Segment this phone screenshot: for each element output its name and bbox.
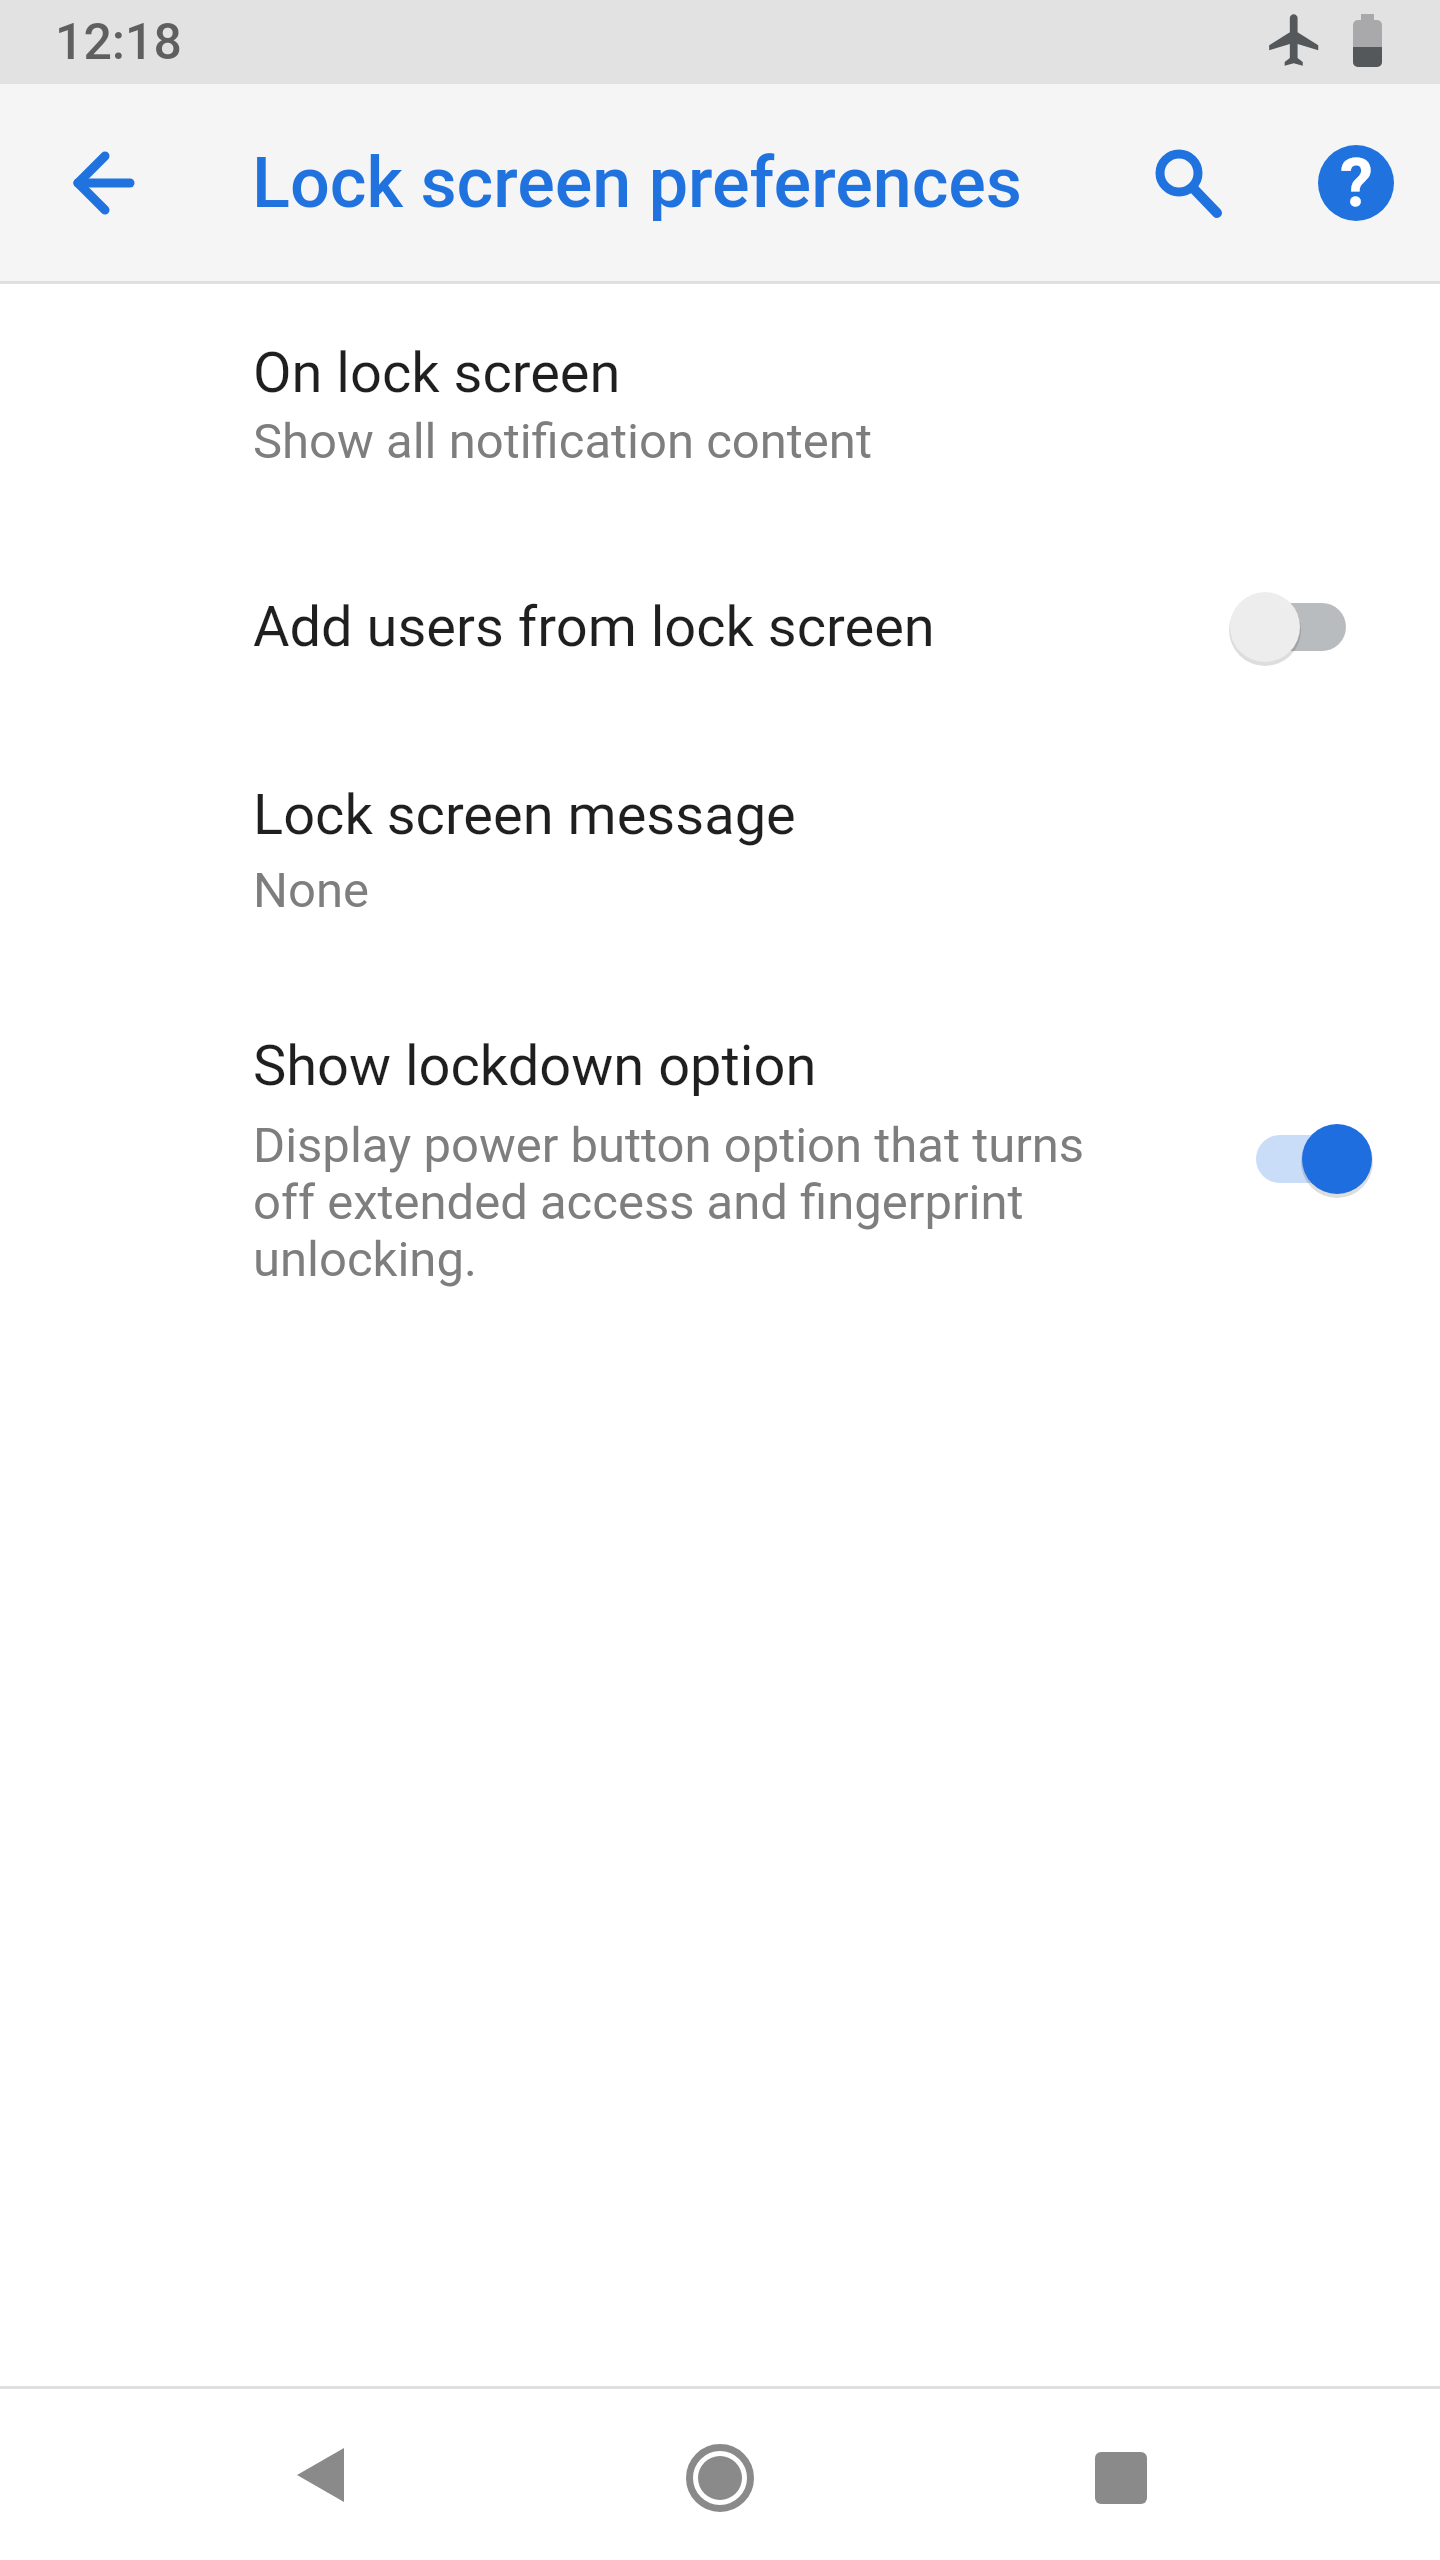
- staticText: None: [253, 862, 369, 919]
- staticText: Show lockdown option: [253, 1033, 817, 1099]
- staticText: ?: [1340, 145, 1373, 221]
- button[interactable]: Add users from lock screen: [0, 531, 1440, 723]
- button[interactable]: [1229, 1123, 1373, 1195]
- button[interactable]: [665, 2423, 775, 2533]
- button[interactable]: [1135, 135, 1231, 231]
- staticText: Lock screen message: [253, 782, 796, 848]
- button[interactable]: [1229, 591, 1373, 663]
- button[interactable]: [1066, 2423, 1176, 2533]
- staticText: On lock screen: [253, 340, 621, 406]
- button[interactable]: [48, 127, 160, 239]
- button[interactable]: Lock screen message: [0, 723, 1440, 976]
- button[interactable]: Show lockdown option: [0, 976, 1440, 1352]
- button[interactable]: [265, 2420, 375, 2530]
- button[interactable]: ?: [1318, 145, 1394, 221]
- staticText: Show all notification content: [253, 413, 872, 470]
- staticText: 12:18: [55, 13, 182, 72]
- staticText: Display power button option that turns o…: [253, 1117, 1085, 1288]
- staticText: Lock screen preferences: [252, 142, 1023, 224]
- button[interactable]: On lock screen: [0, 284, 1440, 531]
- staticText: Add users from lock screen: [253, 594, 935, 660]
